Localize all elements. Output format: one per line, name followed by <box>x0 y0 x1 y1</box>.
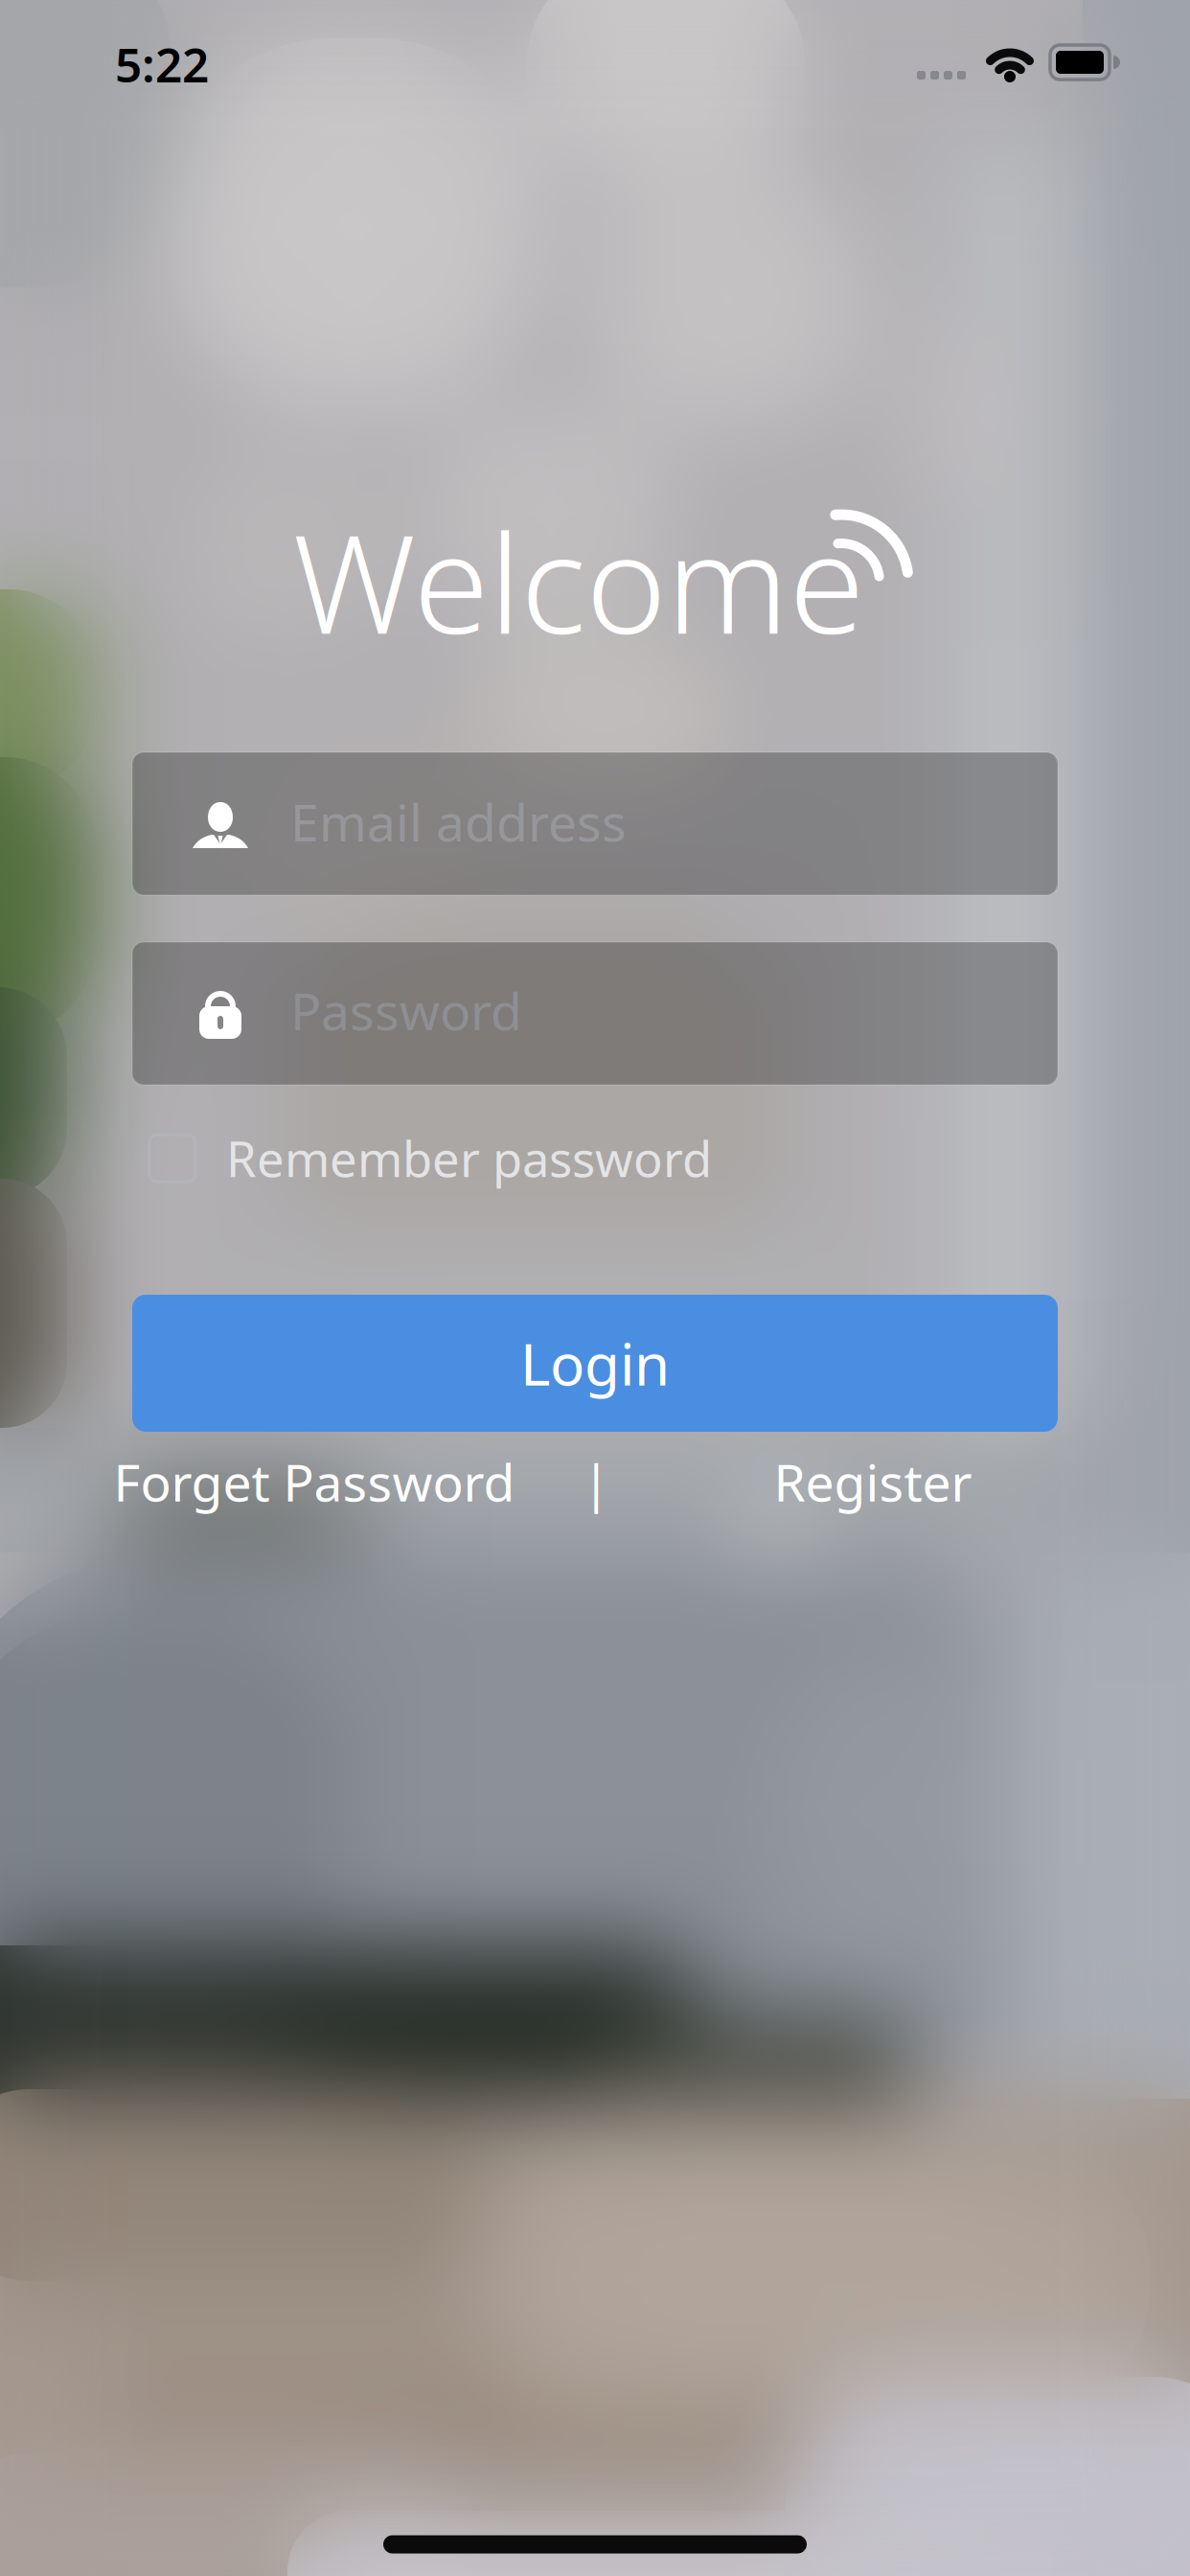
staticText: Forget Password <box>114 1448 515 1516</box>
button[interactable]: Remember password <box>149 1126 712 1191</box>
button[interactable]: Password <box>132 942 1058 1085</box>
button[interactable]: Forget Password <box>114 1448 515 1516</box>
button[interactable]: Email address <box>132 752 1058 895</box>
staticText: Password <box>290 977 522 1044</box>
button[interactable]: Register <box>774 1448 972 1516</box>
staticText: Welcome <box>293 490 865 672</box>
staticText: | <box>582 1448 610 1516</box>
button[interactable]: Login <box>132 1295 1058 1432</box>
staticText: Register <box>774 1448 972 1516</box>
staticText: 5:22 <box>115 33 209 95</box>
staticText: Remember password <box>226 1126 712 1191</box>
staticText: Login <box>520 1325 670 1401</box>
staticText: Email address <box>290 788 627 856</box>
